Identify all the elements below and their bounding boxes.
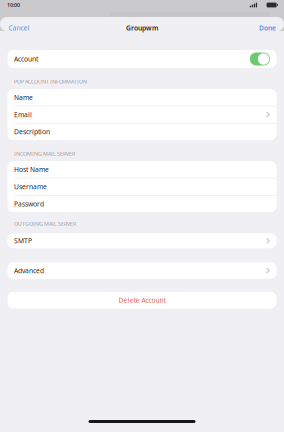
staticText: INCOMING MAIL SERVER bbox=[14, 150, 75, 157]
staticText: Account bbox=[14, 55, 38, 63]
staticText: Done bbox=[259, 24, 276, 32]
button[interactable]: Advanced bbox=[7, 262, 276, 279]
button[interactable]: Done bbox=[251, 19, 284, 37]
staticText: 10:00 bbox=[7, 1, 20, 9]
staticText: Advanced bbox=[14, 266, 44, 275]
staticText: Username bbox=[14, 182, 47, 191]
button[interactable]: SMTP bbox=[7, 233, 276, 248]
staticText: Cancel bbox=[8, 24, 29, 32]
staticText: Password bbox=[14, 199, 44, 208]
staticText: Description bbox=[14, 127, 50, 136]
staticText: Host Name bbox=[14, 165, 49, 174]
staticText: SMTP bbox=[14, 236, 32, 245]
staticText: POP ACCOUNT INFORMATION bbox=[14, 78, 87, 85]
staticText: OUTGOING MAIL SERVER bbox=[14, 220, 76, 227]
staticText: Groupwm bbox=[126, 24, 158, 32]
button[interactable]: Username bbox=[7, 178, 276, 195]
button[interactable]: Host Name bbox=[7, 161, 276, 178]
staticText: Email bbox=[14, 110, 32, 119]
button[interactable]: Delete Account bbox=[7, 292, 276, 308]
button[interactable]: Email bbox=[7, 106, 276, 123]
button[interactable]: Name bbox=[7, 89, 276, 106]
staticText: Delete Account bbox=[118, 296, 165, 305]
button[interactable]: Description bbox=[7, 123, 276, 140]
staticText: Name bbox=[14, 93, 33, 102]
button[interactable]: Password bbox=[7, 196, 276, 212]
button[interactable]: Cancel bbox=[0, 19, 37, 37]
